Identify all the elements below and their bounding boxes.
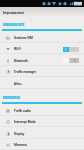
staticText: Intercept Mode [14, 120, 36, 124]
button[interactable]: Gestione SIM [0, 32, 84, 43]
staticText: Profili audio [14, 109, 31, 113]
staticText: Traffic manager [14, 70, 37, 74]
staticText: Impostazioni [3, 10, 24, 15]
button[interactable]: Altro... [0, 78, 84, 89]
button[interactable]: Bluetooth [0, 55, 84, 66]
staticText: Impostazioni [3, 10, 24, 15]
button[interactable]: Intercept Mode [0, 116, 84, 127]
button[interactable]: Profili audio [0, 105, 84, 116]
staticText: Bluetooth [14, 59, 28, 63]
staticText: DISPOSITIVO [3, 96, 21, 100]
staticText: Altro... [14, 82, 24, 86]
button[interactable]: Wi-Fi [0, 43, 84, 54]
staticText: Altro... [14, 82, 24, 86]
staticText: Intercept Mode [14, 120, 36, 124]
staticText: Wi-Fi [14, 47, 21, 51]
staticText: Profili audio [14, 109, 31, 113]
staticText: Memoria [14, 143, 27, 147]
staticText: DISPOSITIVO [3, 96, 21, 100]
staticText: Display [14, 132, 25, 136]
staticText: Gestione SIM [14, 36, 33, 40]
staticText: Bluetooth [14, 59, 28, 63]
staticText: Memoria [14, 143, 27, 147]
staticText: Wi-Fi [14, 47, 21, 51]
staticText: WIRELESS E RETI [3, 23, 25, 27]
button[interactable]: Display [0, 128, 84, 139]
staticText: Display [14, 132, 25, 136]
staticText: WIRELESS E RETI [3, 23, 25, 27]
button[interactable]: Memoria [0, 139, 84, 150]
button[interactable]: Traffic manager [0, 66, 84, 77]
staticText: Traffic manager [14, 70, 37, 74]
staticText: Gestione SIM [14, 36, 33, 40]
